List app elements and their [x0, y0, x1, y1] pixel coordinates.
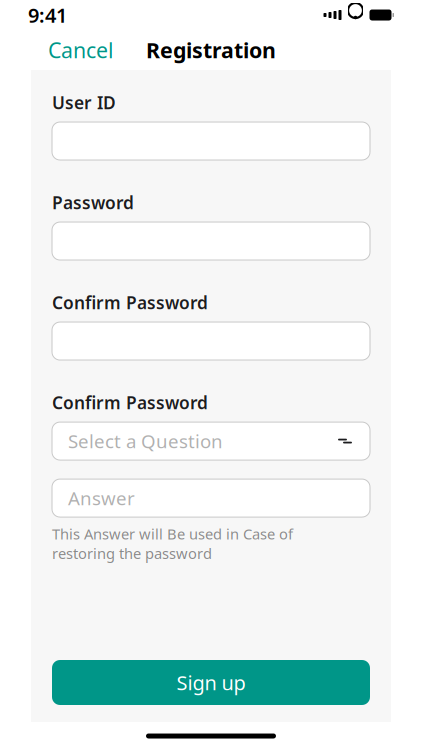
staticText: Confirm Password: [52, 391, 208, 414]
button[interactable]: Answer: [52, 479, 370, 517]
staticText: Password: [52, 191, 134, 214]
button[interactable]: Cancel: [44, 30, 118, 70]
staticText: Sign up: [176, 669, 245, 696]
button[interactable]: [52, 222, 370, 260]
staticText: Cancel: [48, 36, 114, 64]
button[interactable]: [52, 322, 370, 360]
button[interactable]: Select a Question: [52, 422, 370, 460]
staticText: Select a Question: [68, 429, 223, 453]
staticText: Answer: [68, 486, 135, 510]
button[interactable]: [52, 122, 370, 160]
staticText: This Answer will Be used in Case of rest…: [52, 524, 293, 563]
staticText: User ID: [52, 91, 116, 114]
staticText: Registration: [146, 36, 276, 64]
staticText: Confirm Password: [52, 291, 208, 314]
button[interactable]: Sign up: [52, 660, 370, 705]
staticText: 9:41: [28, 2, 67, 28]
